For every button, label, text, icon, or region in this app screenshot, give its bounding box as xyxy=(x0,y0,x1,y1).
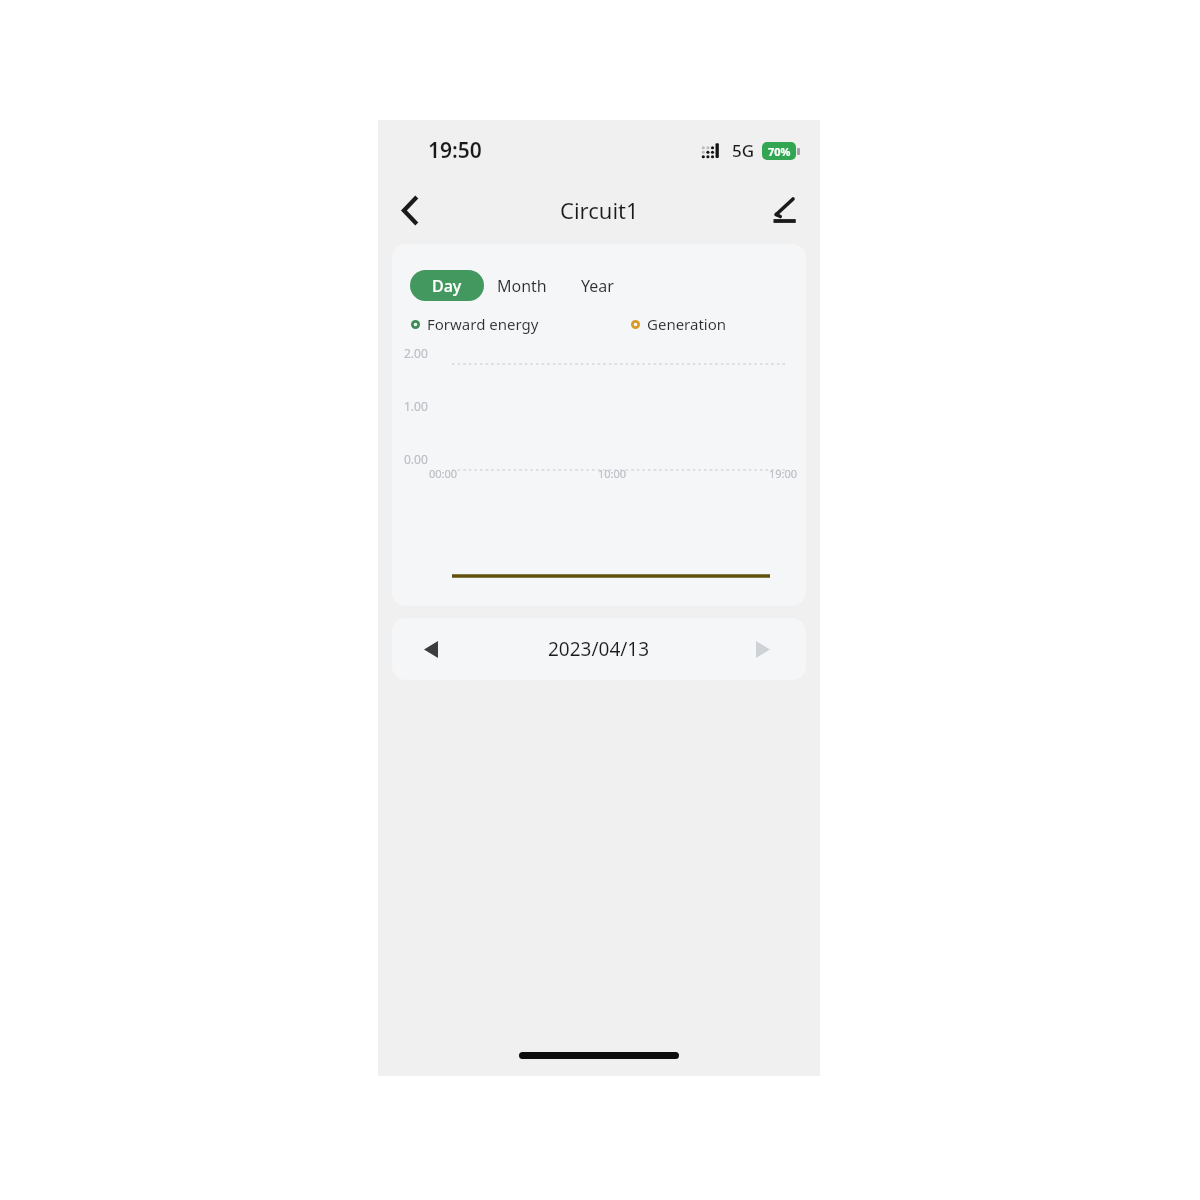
button[interactable]: Year xyxy=(560,270,634,301)
staticText: 00:00 xyxy=(429,466,458,481)
staticText: 1.00 xyxy=(404,398,428,414)
button[interactable]: Day xyxy=(410,270,484,301)
staticText: 2023/04/13 xyxy=(548,636,650,662)
button[interactable]: Back xyxy=(386,186,434,234)
staticText: 0.00 xyxy=(404,451,428,467)
staticText: 19:50 xyxy=(428,136,482,165)
staticText: Circuit1 xyxy=(560,195,639,225)
staticText: Forward energy xyxy=(427,314,539,334)
staticText: 10:00 xyxy=(598,466,627,481)
staticText: 2.00 xyxy=(404,345,428,361)
staticText: Generation xyxy=(647,314,727,334)
staticText: 5G xyxy=(732,139,755,162)
button[interactable]: Next day xyxy=(742,628,784,670)
button[interactable]: Edit xyxy=(760,186,808,234)
staticText: 19:00 xyxy=(769,466,798,481)
staticText: Month xyxy=(497,275,547,297)
staticText: 70% xyxy=(768,144,791,159)
staticText: Day xyxy=(432,275,462,297)
staticText: Year xyxy=(581,275,614,297)
button[interactable]: Previous day xyxy=(410,628,452,670)
button[interactable]: Month xyxy=(484,270,560,301)
